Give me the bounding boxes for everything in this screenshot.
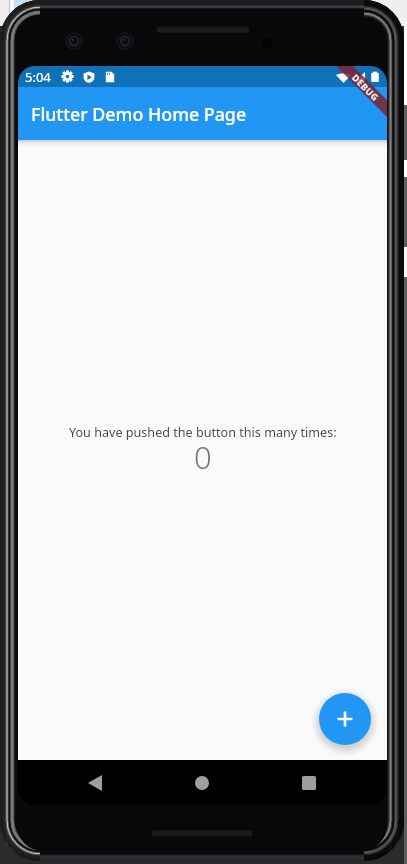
- button[interactable]: Back: [74, 762, 116, 804]
- staticText: 5:04: [25, 68, 51, 86]
- button[interactable]: Increment: [319, 693, 371, 745]
- staticText: You have pushed the button this many tim…: [69, 424, 337, 441]
- button[interactable]: Recents: [288, 762, 330, 804]
- staticText: 0: [194, 436, 212, 478]
- button[interactable]: Home: [181, 762, 223, 804]
- staticText: Flutter Demo Home Page: [31, 102, 247, 126]
